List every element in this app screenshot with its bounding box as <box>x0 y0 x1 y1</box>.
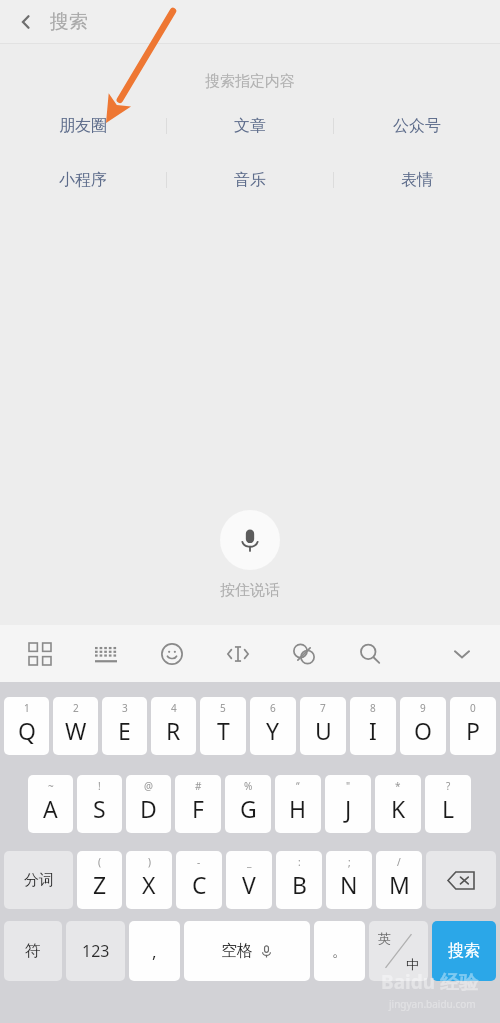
staticText: @ <box>144 779 153 793</box>
staticText: - <box>197 855 201 869</box>
button[interactable]: 小程序 <box>0 168 166 192</box>
button[interactable]: Space <box>184 921 310 981</box>
staticText: 6 <box>270 701 276 715</box>
staticText: 英 <box>378 930 391 946</box>
staticText: E <box>118 715 131 746</box>
button[interactable]: 1 <box>4 697 49 755</box>
staticText: I <box>369 715 377 746</box>
staticText: 123 <box>82 940 110 962</box>
staticText: K <box>391 793 406 824</box>
staticText: R <box>166 715 181 746</box>
button[interactable]: 4 <box>151 697 196 755</box>
button[interactable]: , <box>129 921 180 981</box>
button[interactable]: " <box>325 775 371 833</box>
staticText: 3 <box>122 701 128 715</box>
staticText: 小程序 <box>59 170 107 190</box>
button[interactable]: 搜索 <box>432 921 496 981</box>
button[interactable]: @ <box>126 775 171 833</box>
button[interactable]: Hide keyboard <box>444 636 480 672</box>
button[interactable]: * <box>375 775 421 833</box>
button[interactable]: Back <box>6 2 46 42</box>
button[interactable]: “ <box>275 775 321 833</box>
button[interactable]: 8 <box>350 697 396 755</box>
button[interactable]: 5 <box>200 697 246 755</box>
staticText: * <box>395 779 401 793</box>
staticText: ) <box>148 855 151 869</box>
staticText: N <box>340 869 358 900</box>
staticText: 2 <box>73 701 79 715</box>
button[interactable]: - <box>176 851 222 909</box>
button[interactable]: : <box>276 851 322 909</box>
button[interactable]: Hold to talk <box>220 510 280 570</box>
staticText: S <box>93 793 106 824</box>
staticText: 5 <box>220 701 226 715</box>
staticText: 中 <box>406 956 419 972</box>
button[interactable]: ( <box>77 851 122 909</box>
staticText: 符 <box>25 941 41 961</box>
staticText: ! <box>98 779 101 793</box>
staticText: jingyan.baidu.com <box>389 997 476 1011</box>
staticText: " <box>346 779 351 793</box>
staticText: ? <box>446 779 451 793</box>
button[interactable]: % <box>225 775 271 833</box>
button[interactable]: 6 <box>250 697 296 755</box>
staticText: H <box>289 793 307 824</box>
button[interactable]: / <box>376 851 422 909</box>
button[interactable]: Clip <box>286 636 322 672</box>
staticText: 空格 <box>221 941 253 961</box>
button[interactable]: Search <box>352 636 388 672</box>
staticText: 按住说话 <box>220 581 280 600</box>
staticText: / <box>397 855 401 869</box>
button[interactable]: 朋友圈 <box>0 114 166 138</box>
button[interactable]: 。 <box>314 921 365 981</box>
button[interactable]: ; <box>326 851 372 909</box>
button[interactable]: ) <box>126 851 172 909</box>
button[interactable]: Cursor <box>220 636 256 672</box>
button[interactable]: 表情 <box>334 168 500 192</box>
staticText: “ <box>296 779 300 793</box>
button[interactable]: Emoji <box>154 636 190 672</box>
button[interactable]: 7 <box>300 697 346 755</box>
button[interactable]: 符 <box>4 921 62 981</box>
button[interactable]: 0 <box>450 697 496 755</box>
button[interactable]: Keyboard <box>88 636 124 672</box>
button[interactable]: 文章 <box>167 114 333 138</box>
button[interactable]: Apps <box>22 636 58 672</box>
button[interactable]: 分词 <box>4 851 73 909</box>
staticText: O <box>414 715 432 746</box>
button[interactable]: Backspace <box>426 851 496 909</box>
staticText: V <box>242 869 256 900</box>
staticText: Z <box>93 869 107 900</box>
button[interactable]: ~ <box>28 775 73 833</box>
staticText: A <box>43 793 58 824</box>
button[interactable]: 公众号 <box>334 114 500 138</box>
staticText: 音乐 <box>234 170 266 190</box>
button[interactable]: 2 <box>53 697 98 755</box>
staticText: Baidu 经验 <box>381 969 478 995</box>
staticText: U <box>315 715 332 746</box>
staticText: G <box>240 793 257 824</box>
staticText: 朋友圈 <box>59 116 107 136</box>
button[interactable]: Switch language <box>369 921 428 981</box>
staticText: ~ <box>48 779 54 793</box>
button[interactable]: 音乐 <box>167 168 333 192</box>
staticText: ( <box>98 855 101 869</box>
button[interactable]: ? <box>425 775 471 833</box>
button[interactable]: # <box>175 775 221 833</box>
staticText: 公众号 <box>393 116 441 136</box>
staticText: X <box>142 869 156 900</box>
staticText: D <box>140 793 157 824</box>
staticText: 。 <box>332 942 347 961</box>
staticText: : <box>298 855 301 869</box>
button[interactable]: 3 <box>102 697 147 755</box>
staticText: C <box>192 869 207 900</box>
staticText: F <box>192 793 204 824</box>
button[interactable]: 9 <box>400 697 446 755</box>
button[interactable]: ! <box>77 775 122 833</box>
staticText: 8 <box>370 701 376 715</box>
staticText: 7 <box>320 701 326 715</box>
button[interactable]: _ <box>226 851 272 909</box>
staticText: W <box>65 715 87 746</box>
staticText: 4 <box>171 701 177 715</box>
button[interactable]: 123 <box>66 921 125 981</box>
